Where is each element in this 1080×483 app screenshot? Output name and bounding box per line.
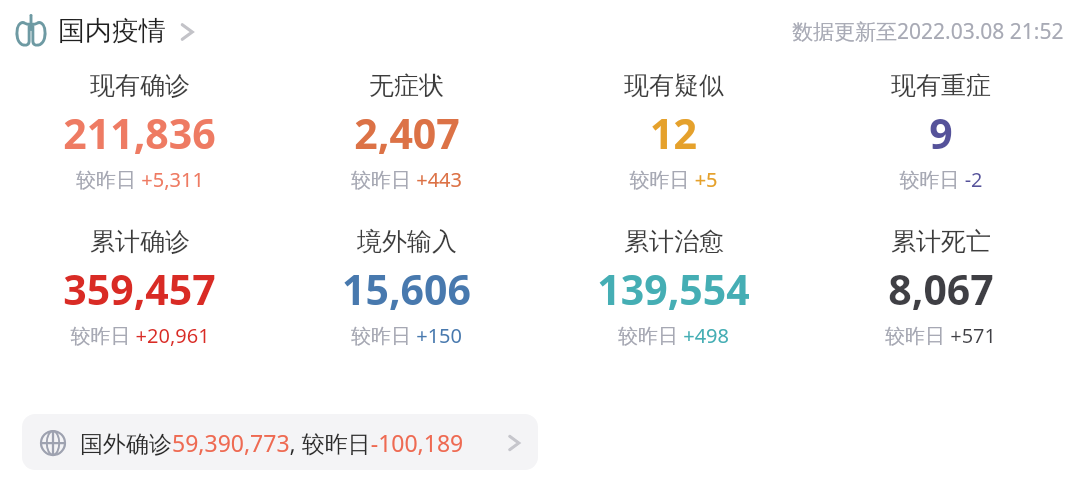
staticText: 较昨日 +5,311 [76,166,204,193]
staticText: 无症状 [369,70,444,101]
staticText: 12 [650,105,697,161]
staticText: 较昨日 +443 [351,166,462,193]
button[interactable]: 累计死亡 [807,226,1074,349]
other: Domestic epidemic [14,14,48,48]
staticText: 9 [929,105,953,161]
staticText: 8,067 [888,261,994,317]
staticText: 现有确诊 [90,70,190,101]
staticText: 现有重症 [891,70,991,101]
button[interactable]: 累计治愈 [540,226,807,349]
staticText: 较昨日 -2 [899,166,983,193]
button[interactable]: 累计确诊 [6,226,273,349]
staticText: 较昨日 +571 [885,322,996,349]
button[interactable]: 现有疑似 [540,70,807,193]
staticText: 211,836 [63,105,216,161]
button[interactable]: 境外输入 [273,226,540,349]
staticText: 国外确诊59,390,773, 较昨日-100,189 [80,427,464,458]
staticText: 359,457 [63,261,216,317]
staticText: 累计死亡 [891,226,991,257]
staticText: 较昨日 +20,961 [70,322,210,349]
staticText: 累计治愈 [624,226,724,257]
staticText: 较昨日 +5 [629,166,718,193]
button[interactable]: 现有确诊 [6,70,273,193]
staticText: 2,407 [354,105,460,161]
button[interactable]: 现有重症 [807,70,1074,193]
button[interactable]: Domestic epidemic [14,14,200,48]
staticText: 较昨日 +498 [618,322,729,349]
button[interactable]: 国外确诊59,390,773, 较昨日-100,189 [22,414,538,470]
staticText: 139,554 [597,261,750,317]
staticText: 境外输入 [357,226,457,257]
staticText: 较昨日 +150 [351,322,462,349]
staticText: 数据更新至2022.03.08 21:52 [792,17,1064,46]
button[interactable]: 无症状 [273,70,540,193]
staticText: 现有疑似 [624,70,724,101]
staticText: 累计确诊 [90,226,190,257]
staticText: 国内疫情 [58,14,166,48]
staticText: 15,606 [342,261,471,317]
